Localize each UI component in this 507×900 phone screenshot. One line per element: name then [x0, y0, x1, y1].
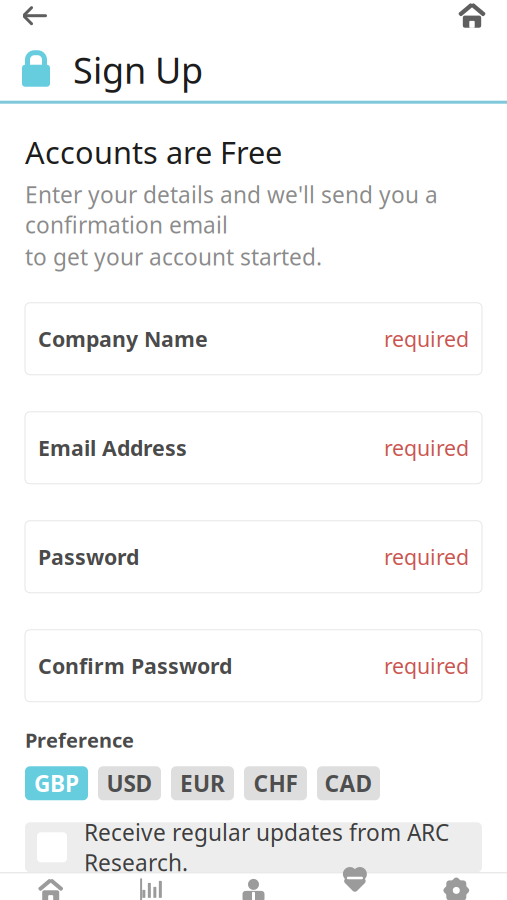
- staticText: GBP: [34, 768, 79, 798]
- staticText: required: [384, 652, 469, 680]
- button[interactable]: GBP: [25, 766, 88, 800]
- staticText: Accounts are Free: [25, 132, 282, 172]
- button[interactable]: Company Name: [25, 303, 482, 375]
- button[interactable]: Back: [8, 0, 62, 38]
- staticText: Enter your details and we'll send you a …: [25, 179, 438, 240]
- button[interactable]: EUR: [171, 766, 234, 800]
- button[interactable]: CAD: [317, 766, 380, 800]
- button[interactable]: Home: [445, 0, 499, 38]
- staticText: required: [384, 543, 469, 571]
- staticText: Company Name: [38, 325, 208, 353]
- staticText: CHF: [253, 768, 297, 798]
- staticText: EUR: [180, 768, 225, 798]
- staticText: Password: [38, 543, 139, 571]
- button[interactable]: Managers: [203, 873, 304, 900]
- button[interactable]: QuickCheck: [304, 873, 406, 900]
- staticText: Preference: [25, 727, 134, 753]
- staticText: Sign Up: [73, 46, 203, 94]
- button[interactable]: Home: [0, 873, 101, 900]
- staticText: USD: [106, 768, 152, 798]
- staticText: Email Address: [38, 434, 187, 462]
- button[interactable]: Email Address: [25, 412, 482, 484]
- staticText: to get your account started.: [25, 242, 322, 272]
- staticText: required: [384, 434, 469, 462]
- staticText: CAD: [324, 768, 372, 798]
- button[interactable]: Receive regular updates from ARC Researc…: [25, 822, 482, 872]
- button[interactable]: Confirm Password: [25, 630, 482, 702]
- button[interactable]: Settings: [406, 873, 507, 900]
- button[interactable]: Password: [25, 521, 482, 593]
- button[interactable]: Index Data: [101, 873, 203, 900]
- staticText: Confirm Password: [38, 652, 232, 680]
- button[interactable]: USD: [98, 766, 161, 800]
- staticText: Receive regular updates from ARC Researc…: [84, 817, 449, 877]
- staticText: required: [384, 325, 469, 353]
- button[interactable]: CHF: [244, 766, 307, 800]
